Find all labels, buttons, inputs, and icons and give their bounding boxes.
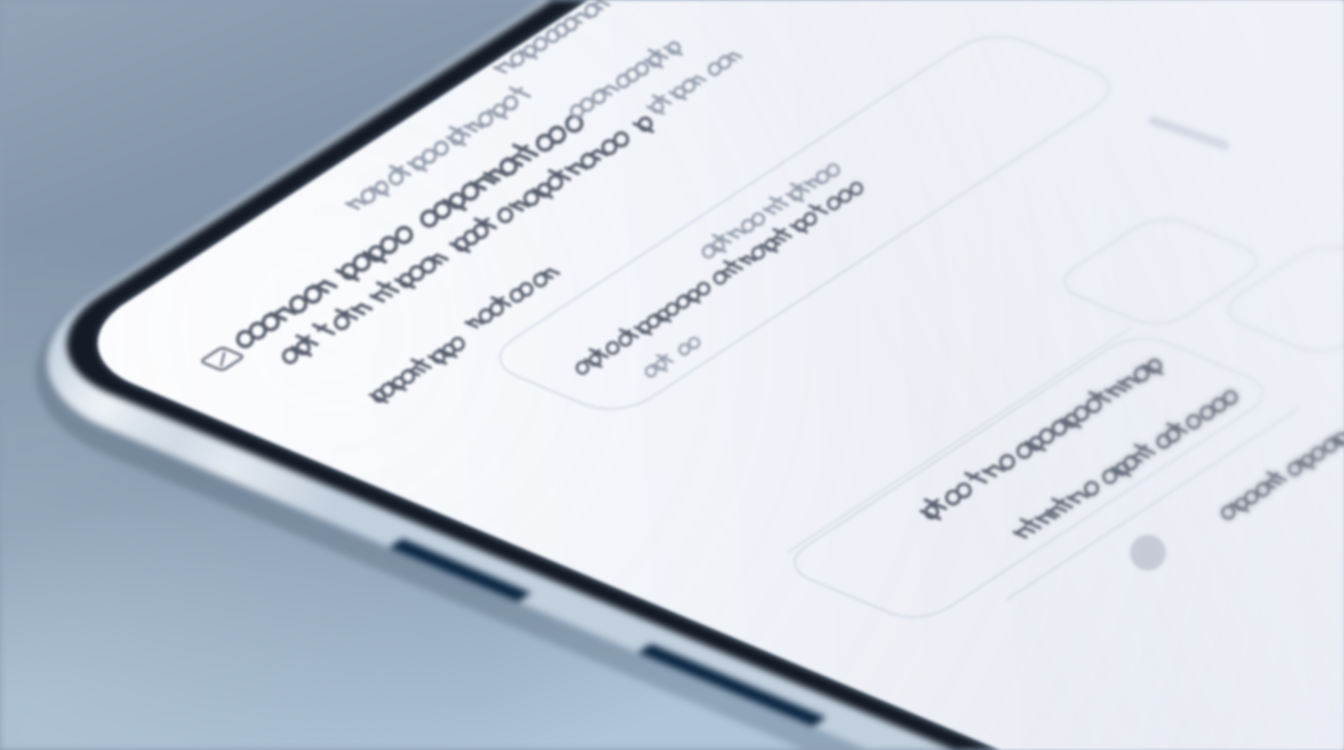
button[interactable]: Menu	[201, 334, 271, 371]
button[interactable]: Screen title	[226, 104, 674, 377]
button[interactable]: Search	[480, 26, 1129, 418]
button[interactable]: Smartphone showing an app screen	[0, 0, 1344, 750]
button[interactable]: List item	[776, 329, 1280, 625]
